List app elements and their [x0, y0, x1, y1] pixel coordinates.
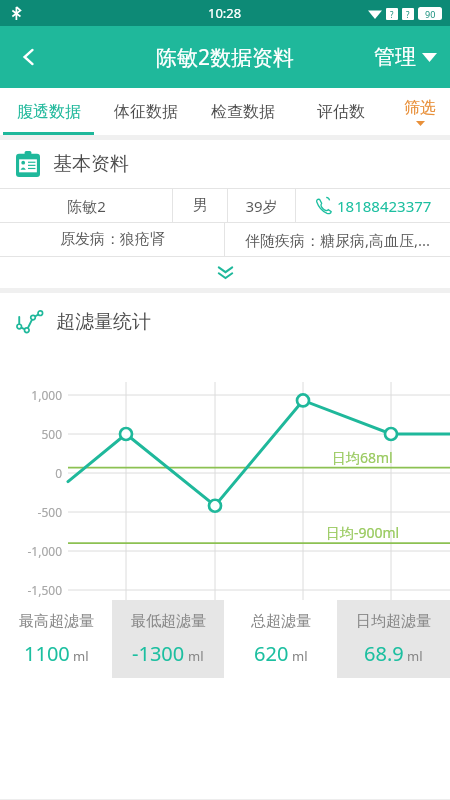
- staticText: 68.9: [364, 640, 404, 667]
- staticText: ?: [390, 9, 394, 20]
- button[interactable]: 体征数据: [97, 88, 194, 135]
- staticText: 体征数据: [114, 102, 178, 122]
- staticText: 最低超滤量: [131, 612, 206, 631]
- staticText: 日均68ml: [332, 448, 393, 467]
- button[interactable]: Expand details: [0, 257, 450, 288]
- staticText: 10:28: [208, 4, 242, 22]
- staticText: 基本资料: [53, 152, 129, 176]
- staticText: ml: [407, 647, 423, 665]
- button[interactable]: 总超滤量: [224, 600, 337, 678]
- staticText: 39岁: [245, 196, 278, 216]
- button[interactable]: 最高超滤量: [0, 600, 112, 678]
- staticText: -1300: [132, 640, 185, 667]
- staticText: 最高超滤量: [19, 612, 94, 631]
- staticText: 总超滤量: [251, 612, 311, 631]
- button[interactable]: Back: [0, 26, 58, 88]
- staticText: ml: [292, 647, 308, 665]
- staticText: ml: [188, 647, 204, 665]
- button[interactable]: 检查数据: [194, 88, 292, 135]
- button[interactable]: 管理: [361, 26, 450, 88]
- staticText: 500: [0, 426, 62, 442]
- staticText: 1100: [24, 640, 70, 667]
- staticText: 1,000: [0, 387, 62, 403]
- button[interactable]: 日均超滤量: [337, 600, 450, 678]
- staticText: 陈敏2数据资料: [156, 43, 295, 72]
- staticText: 0: [0, 465, 62, 481]
- staticText: 陈敏2: [67, 196, 106, 216]
- staticText: 伴随疾病：糖尿病,高血压,...: [245, 230, 431, 250]
- staticText: 18188423377: [337, 196, 432, 216]
- staticText: -1,000: [0, 543, 62, 559]
- staticText: 90: [425, 8, 436, 20]
- staticText: 管理: [374, 44, 416, 70]
- button[interactable]: 最低超滤量: [112, 600, 224, 678]
- staticText: 日均超滤量: [356, 612, 431, 631]
- staticText: 日均-900ml: [326, 523, 400, 542]
- staticText: 评估数: [317, 102, 365, 122]
- staticText: 超滤量统计: [56, 310, 151, 334]
- staticText: 检查数据: [211, 102, 275, 122]
- button[interactable]: 评估数: [292, 88, 390, 135]
- staticText: ml: [73, 647, 89, 665]
- staticText: 男: [193, 196, 208, 215]
- staticText: 原发病：狼疮肾: [60, 230, 165, 249]
- staticText: 620: [254, 640, 289, 667]
- staticText: 筛选: [404, 98, 436, 118]
- button[interactable]: 腹透数据: [0, 88, 97, 135]
- staticText: ?: [406, 9, 410, 20]
- staticText: -1,500: [0, 582, 62, 598]
- staticText: -500: [0, 504, 62, 520]
- button[interactable]: 筛选: [390, 88, 450, 135]
- staticText: 腹透数据: [17, 102, 81, 122]
